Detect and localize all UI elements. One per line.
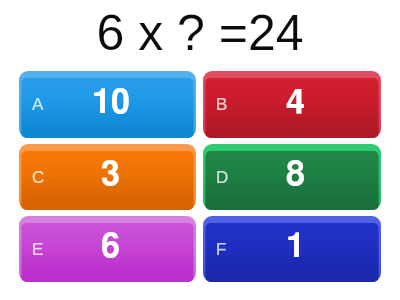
staticText: 3 [101, 158, 120, 192]
button[interactable]: D [203, 144, 381, 210]
staticText: 6 x ? =24 [96, 5, 304, 61]
staticText: 4 [286, 86, 305, 120]
staticText: E [32, 240, 44, 259]
button[interactable]: B [203, 71, 381, 138]
staticText: D [216, 168, 229, 187]
staticText: F [216, 240, 227, 259]
staticText: 8 [286, 158, 305, 192]
staticText: C [32, 168, 45, 187]
staticText: B [216, 95, 228, 114]
button[interactable]: C [19, 144, 196, 210]
staticText: 6 [101, 230, 120, 264]
staticText: 1 [286, 230, 305, 264]
staticText: 10 [92, 86, 130, 120]
button[interactable]: F [203, 216, 381, 282]
staticText: A [32, 95, 44, 114]
button[interactable]: A [19, 71, 196, 138]
button[interactable]: E [19, 216, 196, 282]
